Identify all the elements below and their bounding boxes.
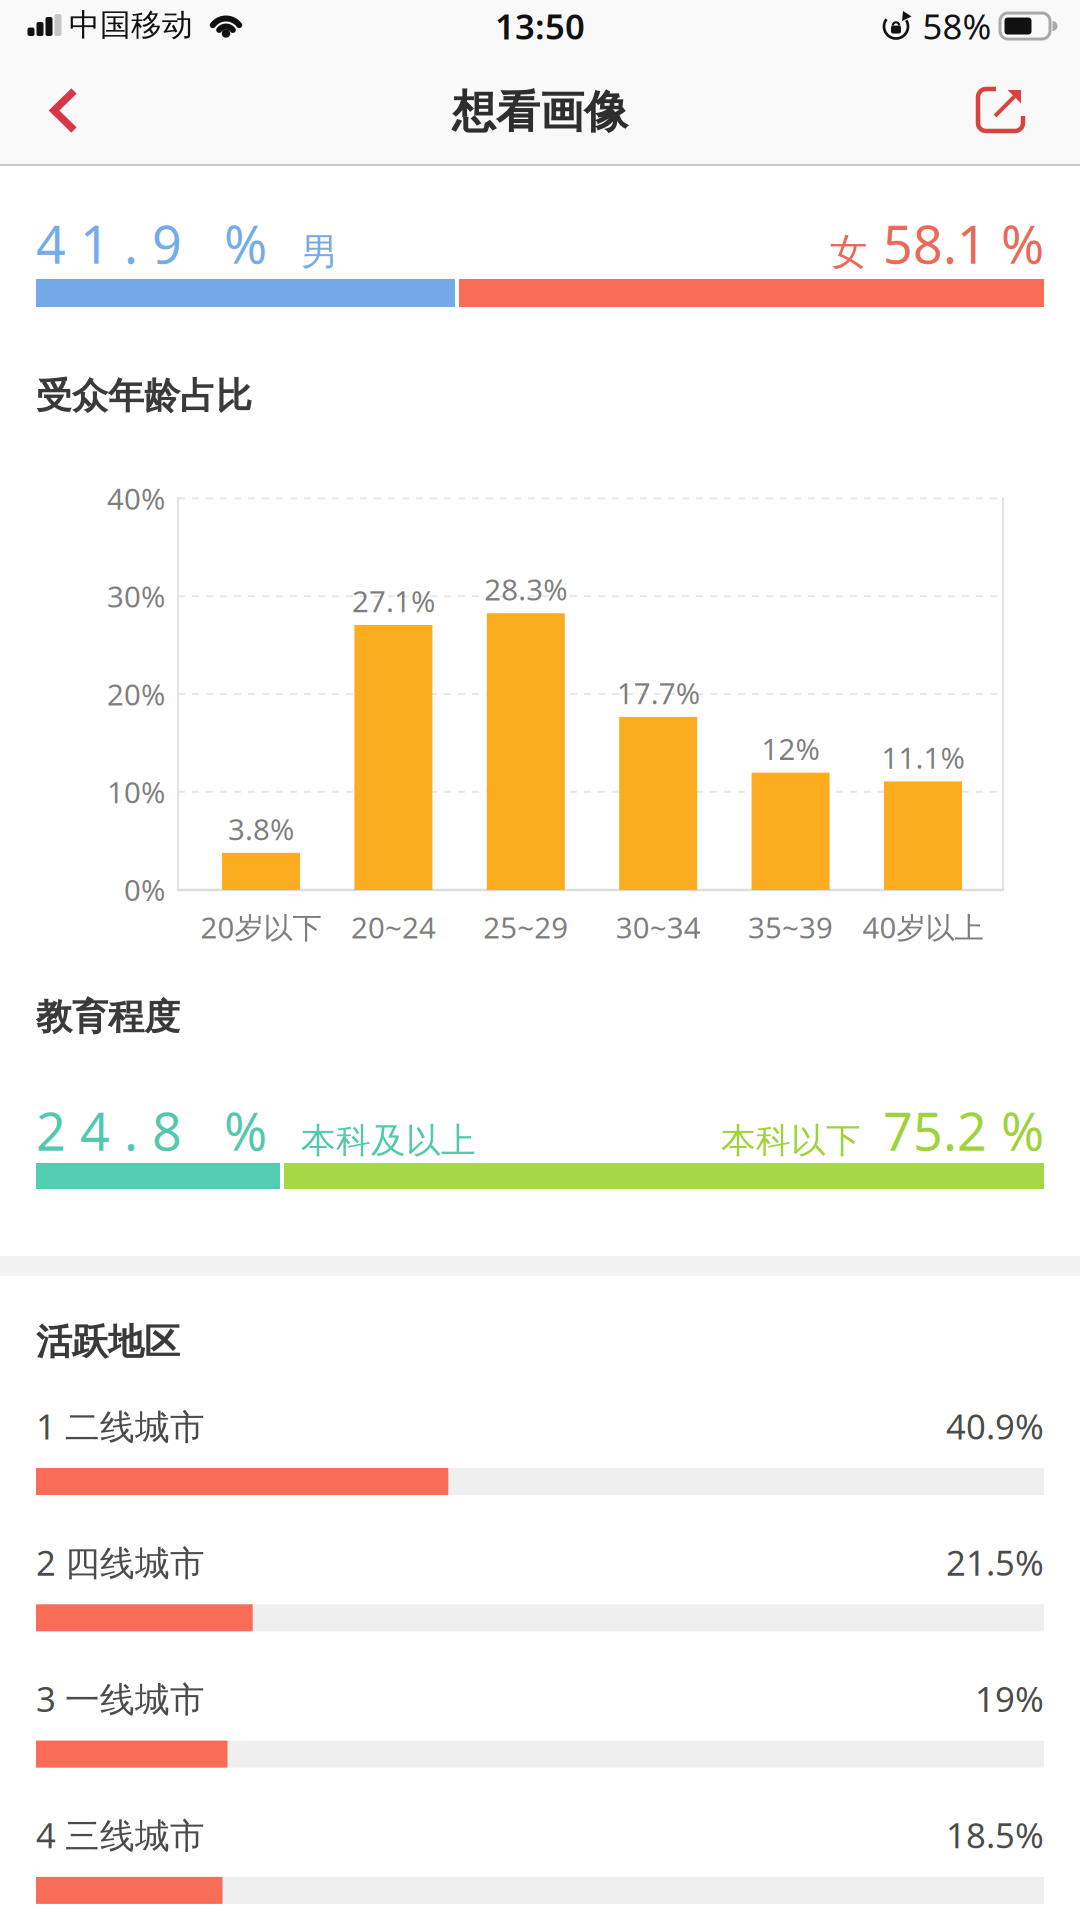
staticText: 20% [107,674,165,713]
staticText: 58% [922,3,991,49]
staticText: 教育程度 [36,995,180,1039]
staticText: 19% [975,1676,1044,1722]
staticText: 40岁以上 [862,907,983,946]
staticText: 30~34 [616,907,701,946]
staticText: 想看画像 [452,85,628,139]
staticText: 受众年龄占比 [36,374,252,418]
staticText: 男 [301,229,338,275]
staticText: 30% [107,577,165,616]
staticText: 20岁以下 [200,907,321,946]
staticText: 3.8% [228,809,294,848]
staticText: 27.1% [352,581,435,620]
staticText: 28.3% [484,570,567,609]
staticText: 中国移动 [69,6,193,44]
staticText: 40.9% [946,1403,1044,1449]
staticText: 0% [124,870,165,909]
staticText: 女 [830,229,867,275]
staticText: 11.1% [881,738,964,777]
staticText: 活跃地区 [36,1320,180,1364]
button[interactable]: Back [0,55,110,165]
button[interactable]: Share [945,46,1055,156]
staticText: 58.1 % [883,209,1044,278]
staticText: 40% [107,479,165,518]
staticText: 2 4 . 8 % [36,1096,267,1165]
staticText: 2 四线城市 [36,1539,205,1585]
staticText: 13:50 [495,3,585,49]
staticText: 4 三线城市 [36,1812,205,1858]
staticText: 75.2 % [883,1096,1044,1165]
staticText: 18.5% [946,1812,1044,1858]
staticText: 25~29 [483,907,568,946]
staticText: 17.7% [617,673,700,712]
staticText: 21.5% [946,1539,1044,1585]
staticText: 3 一线城市 [36,1676,205,1722]
staticText: 本科以下 [721,1119,861,1162]
staticText: 12% [762,729,820,768]
staticText: 1 二线城市 [36,1403,205,1449]
staticText: 4 1 . 9 % [36,209,267,278]
staticText: 本科及以上 [301,1119,476,1162]
staticText: 20~24 [351,907,436,946]
staticText: 35~39 [748,907,833,946]
staticText: 10% [107,772,165,811]
